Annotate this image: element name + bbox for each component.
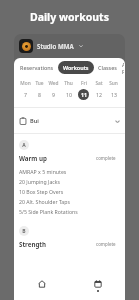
staticText: Classes bbox=[98, 64, 117, 71]
staticText: AMRAP x 5 minutes bbox=[19, 168, 67, 175]
button[interactable]: Thu bbox=[61, 79, 76, 101]
button[interactable]: Fri bbox=[76, 79, 91, 101]
staticText: Studio MMA bbox=[37, 42, 74, 50]
staticText: Fri bbox=[81, 80, 87, 87]
button[interactable]: Sun bbox=[106, 79, 121, 101]
staticText: Workouts bbox=[63, 64, 89, 71]
staticText: Warm up bbox=[19, 154, 47, 162]
button[interactable]: complete bbox=[92, 153, 120, 163]
button[interactable]: Reservations bbox=[19, 61, 55, 74]
staticText: Mon bbox=[20, 80, 31, 87]
button[interactable]: Workouts bbox=[58, 61, 94, 74]
staticText: Sun bbox=[109, 80, 118, 87]
staticText: 12 bbox=[96, 91, 102, 98]
staticText: 9 bbox=[52, 91, 55, 98]
staticText: 11 bbox=[81, 91, 87, 98]
staticText: B bbox=[22, 228, 26, 235]
staticText: 20 Alt. Shoulder Taps bbox=[19, 198, 70, 205]
staticText: Reservations bbox=[20, 64, 54, 71]
staticText: 10 bbox=[66, 91, 72, 98]
button[interactable]: Mon bbox=[18, 79, 32, 101]
staticText: complete bbox=[96, 241, 116, 247]
staticText: Tue bbox=[35, 80, 44, 87]
staticText: complete bbox=[96, 155, 116, 161]
staticText: 10 Box Step Overs bbox=[19, 188, 64, 195]
button[interactable]: Tue bbox=[32, 79, 46, 101]
button[interactable]: Wed bbox=[46, 79, 61, 101]
staticText: 20 Jumping Jacks bbox=[19, 178, 61, 185]
staticText: Daily workouts bbox=[30, 10, 109, 24]
button[interactable]: Bui bbox=[14, 113, 125, 129]
button[interactable]: Classes bbox=[97, 61, 118, 74]
staticText: Thu bbox=[64, 80, 73, 87]
button[interactable]: Ap bbox=[121, 58, 125, 77]
staticText: Bui bbox=[30, 117, 39, 125]
button[interactable] bbox=[19, 39, 33, 53]
staticText: Wed bbox=[48, 80, 59, 87]
button[interactable]: complete bbox=[92, 239, 120, 249]
staticText: 13 bbox=[111, 91, 117, 98]
staticText: 5/5 Side Plank Rotations bbox=[19, 208, 78, 215]
button[interactable]: Switch studio bbox=[77, 42, 85, 50]
button[interactable]: Calendar bbox=[78, 280, 118, 298]
staticText: 8 bbox=[38, 91, 41, 98]
staticText: Ap bbox=[122, 61, 124, 74]
button[interactable]: Home bbox=[22, 280, 62, 298]
staticText: A bbox=[22, 142, 26, 149]
staticText: Strength bbox=[19, 240, 47, 248]
button[interactable]: Sat bbox=[91, 79, 106, 101]
staticText: 7 bbox=[24, 91, 27, 98]
staticText: Sat bbox=[95, 80, 103, 87]
